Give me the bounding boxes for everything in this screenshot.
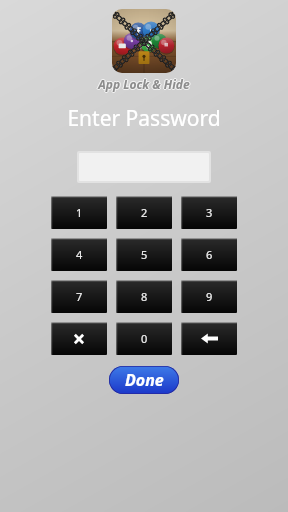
button[interactable]: 0 [116,322,172,355]
staticText: 1 [76,205,83,220]
button[interactable]: 7 [51,280,107,313]
staticText: 8 [141,289,148,304]
staticText: 0 [141,331,148,346]
staticText: 2 [141,205,148,220]
staticText: App Lock & Hide [99,76,191,92]
button[interactable]: 1 [51,196,107,229]
button[interactable]: 6 [181,238,237,271]
staticText: 4 [76,247,83,262]
button[interactable]: 3 [181,196,237,229]
staticText: App Lock & Hide [98,76,190,92]
button[interactable]: Backspace [181,322,237,355]
button[interactable]: 9 [181,280,237,313]
button[interactable]: 8 [116,280,172,313]
button[interactable]: 2 [116,196,172,229]
button[interactable]: 4 [51,238,107,271]
staticText: 9 [206,289,213,304]
staticText: Done [125,369,164,391]
staticText: 7 [76,289,83,304]
staticText: App Lock & Hide [97,76,189,92]
staticText: App Lock & Hide [98,75,190,91]
staticText: 6 [206,247,213,262]
staticText: 3 [206,205,213,220]
button[interactable]: Clear [51,322,107,355]
staticText: Enter Password [67,104,221,133]
button[interactable]: 5 [116,238,172,271]
button[interactable]: Done [109,366,179,394]
staticText: App Lock & Hide [98,77,190,93]
staticText: 5 [141,247,148,262]
